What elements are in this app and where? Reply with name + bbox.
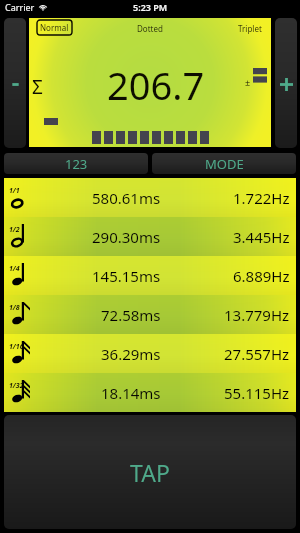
button[interactable]: MODE bbox=[152, 153, 296, 174]
button[interactable]: 1/8 bbox=[4, 295, 296, 334]
staticText: 1/32 bbox=[9, 381, 24, 391]
staticText: MODE bbox=[205, 155, 244, 173]
staticText: 206.7 bbox=[107, 59, 205, 111]
button[interactable]: 1/1 bbox=[4, 178, 296, 217]
staticText: 1/1 bbox=[9, 186, 20, 196]
staticText: Normal bbox=[40, 22, 69, 33]
staticText: 123 bbox=[65, 155, 88, 173]
staticText: 18.14ms bbox=[101, 383, 161, 403]
staticText: 1/2 bbox=[9, 225, 20, 235]
staticText: Σ bbox=[32, 74, 43, 100]
staticText: 580.61ms bbox=[92, 188, 161, 208]
staticText: 27.557Hz bbox=[224, 344, 290, 364]
staticText: 3.445Hz bbox=[233, 227, 290, 247]
staticText: Carrier bbox=[5, 1, 35, 13]
button[interactable]: 123 bbox=[4, 153, 148, 174]
staticText: Dotted bbox=[137, 23, 163, 34]
button[interactable]: 1/32 bbox=[4, 373, 296, 412]
staticText: ± bbox=[245, 76, 251, 88]
button[interactable]: Decrease tempo bbox=[4, 18, 26, 148]
staticText: 290.30ms bbox=[92, 227, 161, 247]
staticText: 13.779Hz bbox=[224, 305, 290, 325]
button[interactable]: TAP bbox=[4, 415, 296, 529]
staticText: 145.15ms bbox=[92, 266, 161, 286]
staticText: 1/16 bbox=[9, 342, 24, 352]
staticText: 72.58ms bbox=[101, 305, 161, 325]
button[interactable]: Increase tempo bbox=[275, 18, 297, 148]
staticText: 55.115Hz bbox=[224, 383, 290, 403]
staticText: 36.29ms bbox=[101, 344, 161, 364]
staticText: 5:23 PM bbox=[133, 1, 168, 13]
staticText: TAP bbox=[130, 457, 170, 488]
staticText: 6.889Hz bbox=[233, 266, 290, 286]
button[interactable]: 1/4 bbox=[4, 256, 296, 295]
button[interactable]: 1/16 bbox=[4, 334, 296, 373]
button[interactable]: 1/2 bbox=[4, 217, 296, 256]
staticText: 1.722Hz bbox=[233, 188, 290, 208]
staticText: 1/4 bbox=[9, 264, 20, 274]
staticText: Triplet bbox=[238, 23, 262, 34]
staticText: 1/8 bbox=[9, 303, 20, 313]
